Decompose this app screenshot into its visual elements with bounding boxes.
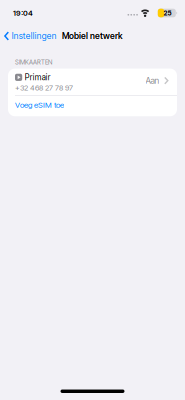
staticText: Voeg eSIM toe	[15, 100, 64, 110]
staticText: 19:04	[13, 8, 33, 17]
staticText: 25	[164, 9, 172, 17]
staticText: Primair	[25, 72, 51, 82]
staticText: Aan	[146, 75, 160, 86]
staticText: SIMKAARTEN	[15, 58, 52, 66]
staticText: Mobiel netwerk	[62, 31, 123, 41]
staticText: Instellingen	[12, 31, 57, 41]
staticText: +32 468 27 78 97	[15, 83, 73, 92]
button[interactable]: Instellingen	[0, 31, 57, 41]
button[interactable]: Primair	[8, 69, 177, 95]
button[interactable]: Voeg eSIM toe	[8, 96, 177, 116]
